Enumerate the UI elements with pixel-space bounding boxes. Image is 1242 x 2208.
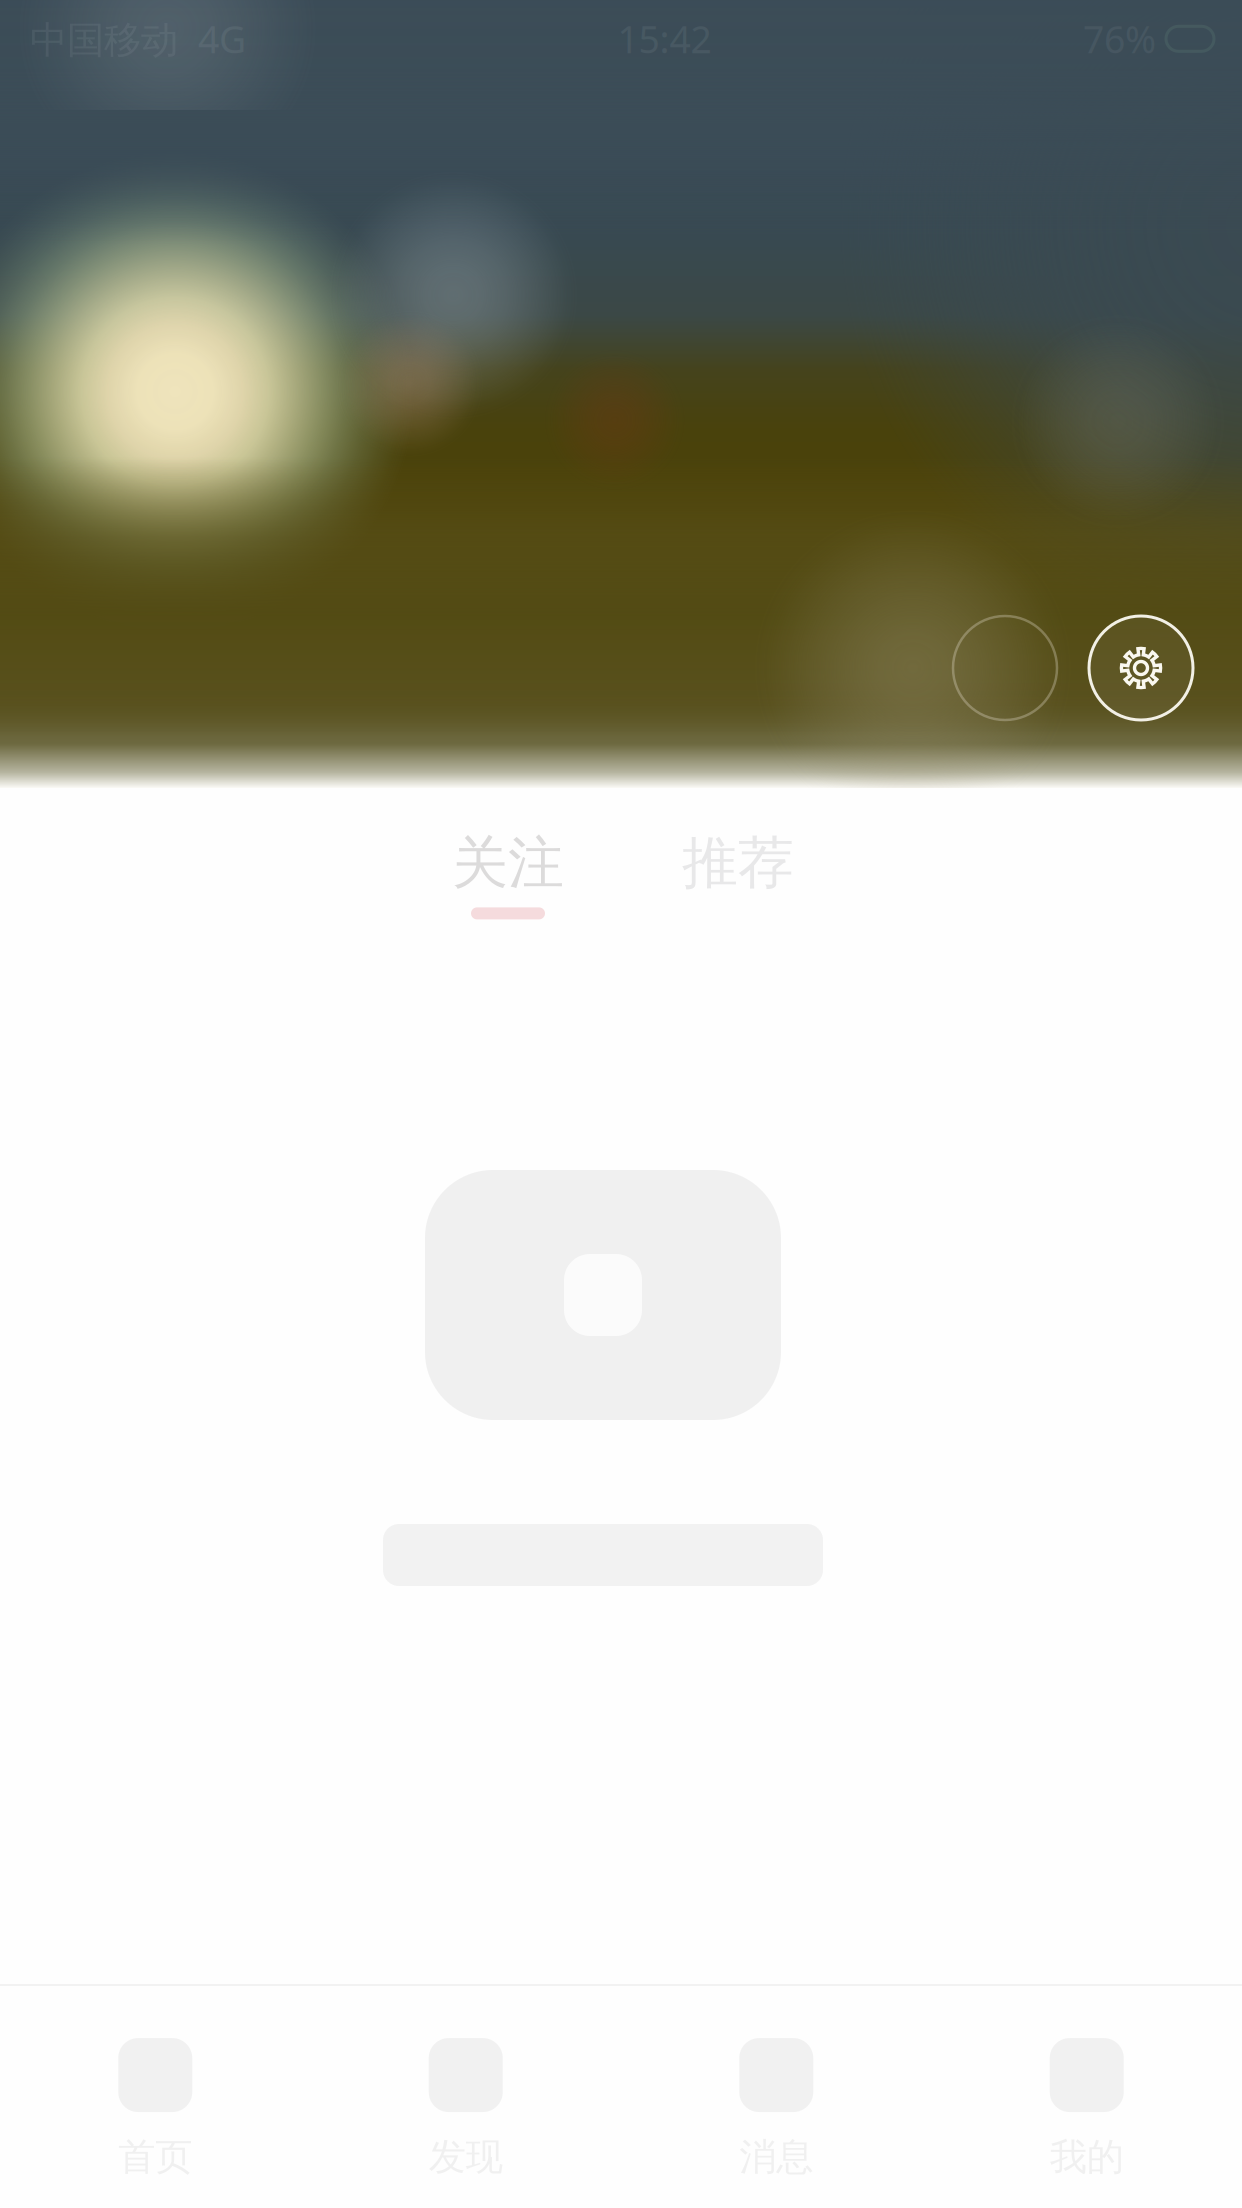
staticText: 76%: [1083, 14, 1156, 64]
button[interactable]: Camera: [953, 616, 1057, 720]
staticText: 消息: [739, 2134, 813, 2180]
staticText: 我的: [1050, 2134, 1124, 2180]
staticText: 推荐: [682, 829, 794, 897]
staticText: 首页: [118, 2134, 192, 2180]
button[interactable]: 我的: [931, 2002, 1242, 2192]
staticText: 15:42: [617, 14, 711, 64]
button[interactable]: 首页: [0, 2002, 310, 2192]
staticText: 中国移动 4G: [30, 14, 246, 64]
button[interactable]: 关注: [452, 829, 564, 919]
button[interactable]: 推荐: [682, 829, 794, 919]
button[interactable]: Settings: [1089, 616, 1193, 720]
button[interactable]: 发现: [310, 2002, 621, 2192]
staticText: 关注: [452, 829, 564, 897]
button[interactable]: 消息: [621, 2002, 931, 2192]
staticText: 发现: [429, 2134, 503, 2180]
